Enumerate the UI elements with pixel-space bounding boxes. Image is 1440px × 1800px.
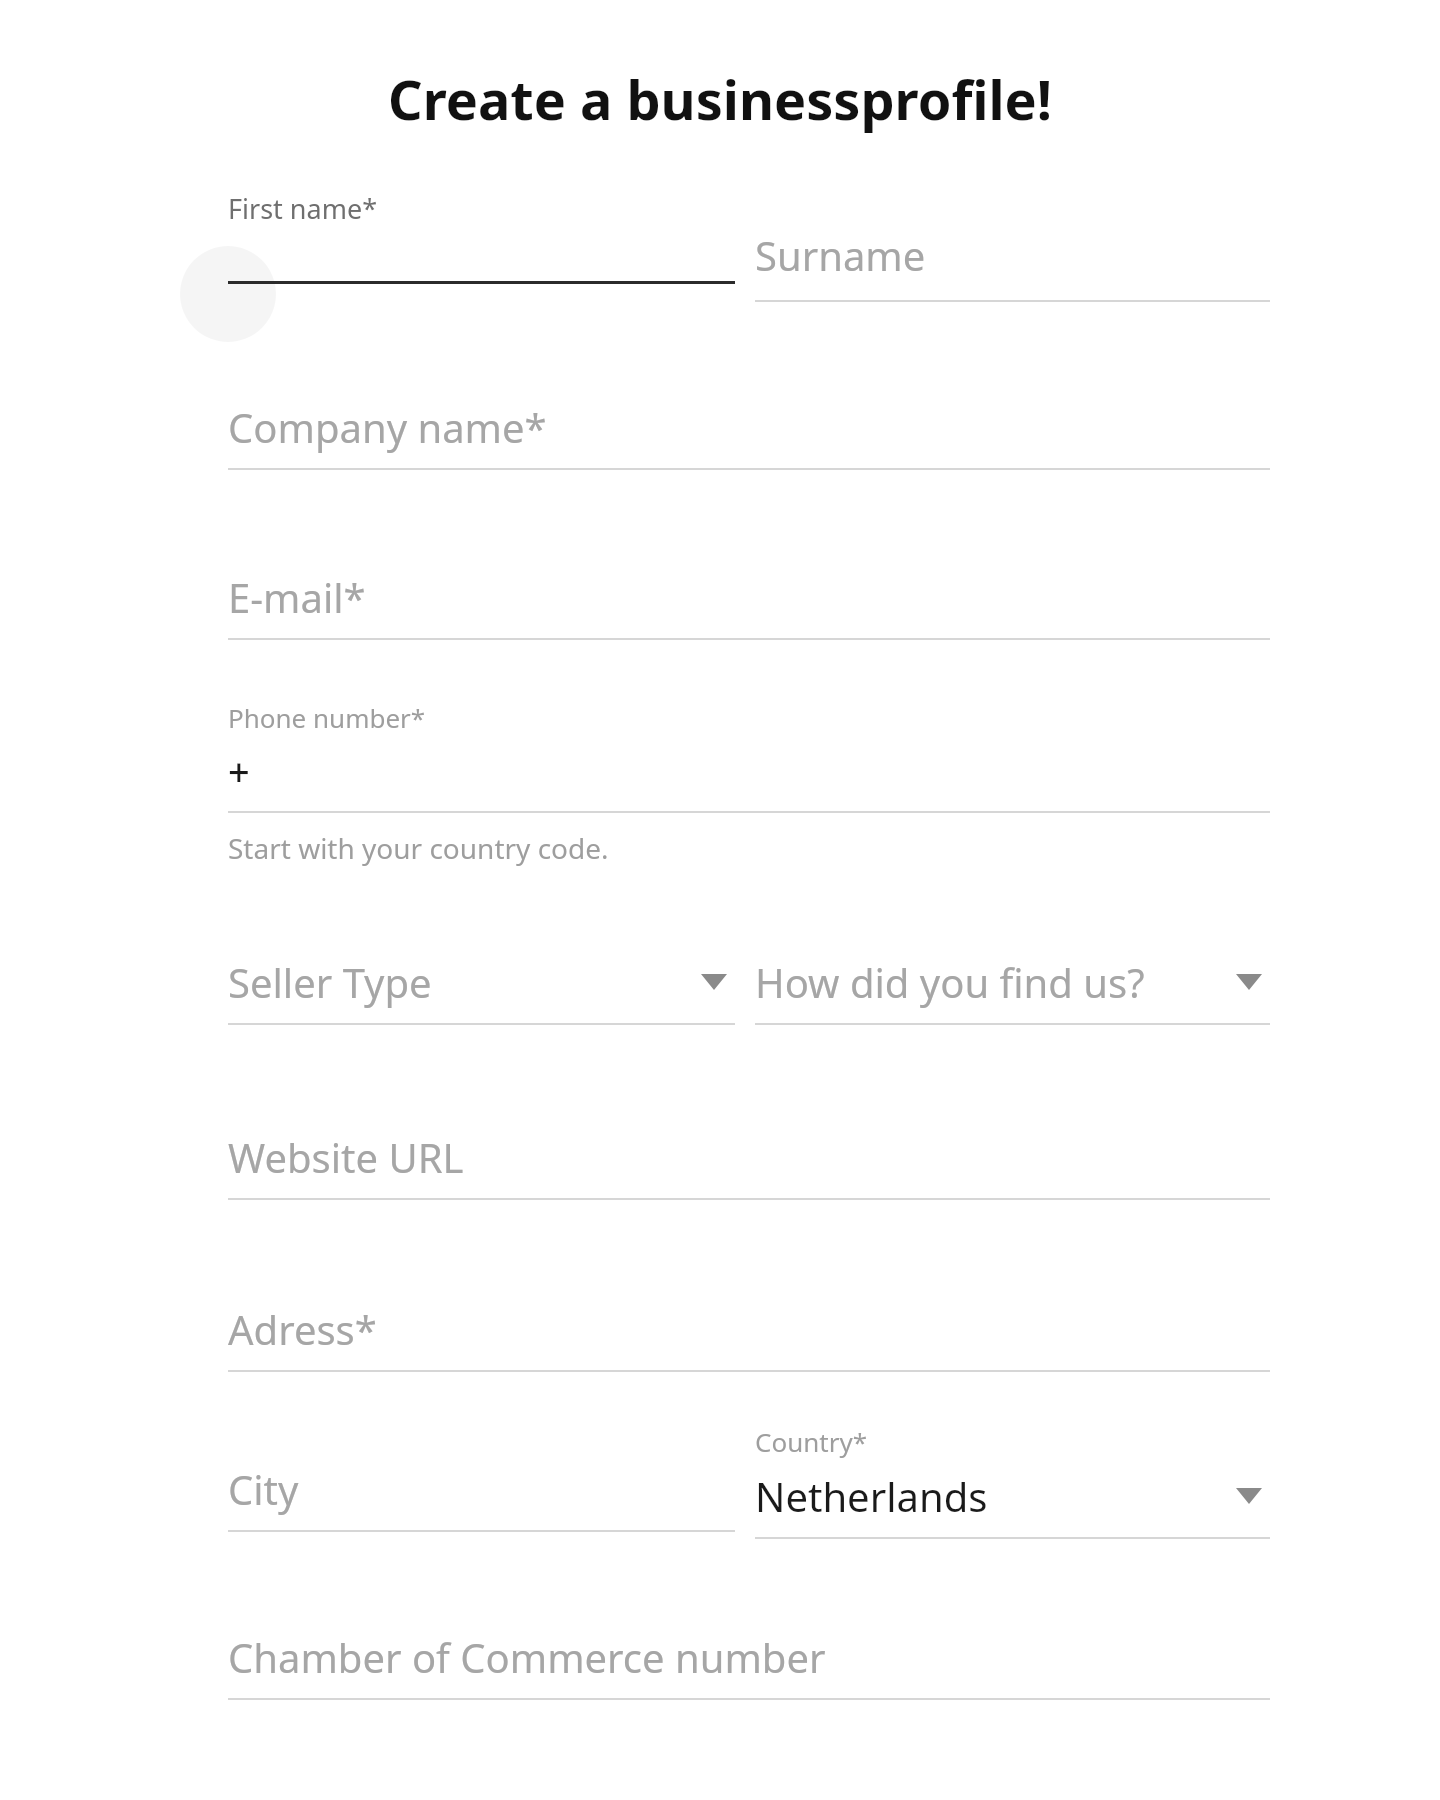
staticText: How did you find us?	[755, 955, 1236, 1009]
staticText: Website URL	[228, 1130, 1270, 1184]
button[interactable]: Chamber of Commerce number	[228, 1630, 1270, 1700]
staticText: City	[228, 1462, 735, 1516]
staticText: E-mail*	[228, 570, 1270, 624]
staticText: Country*	[755, 1424, 868, 1459]
button[interactable]: Phone number*	[228, 700, 1270, 867]
staticText: Adress*	[228, 1302, 1270, 1356]
staticText: First name*	[228, 190, 378, 227]
staticText: Seller Type	[228, 955, 701, 1009]
button[interactable]: Website URL	[228, 1130, 1270, 1200]
staticText: Chamber of Commerce number	[228, 1630, 1270, 1684]
staticText: Create a businessprofile!	[0, 62, 1440, 136]
button[interactable]: Surname	[755, 228, 1270, 302]
button[interactable]: Adress*	[228, 1302, 1270, 1372]
button[interactable]: E-mail*	[228, 570, 1270, 640]
staticText: Netherlands	[755, 1469, 1236, 1523]
button[interactable]: Country dropdown	[755, 1424, 1270, 1539]
staticText: Company name*	[228, 400, 1270, 454]
staticText: Surname	[755, 228, 926, 282]
button[interactable]: City	[228, 1462, 735, 1532]
staticText: Start with your country code.	[228, 829, 609, 867]
staticText: Phone number*	[228, 700, 426, 735]
staticText: +	[228, 745, 1270, 797]
button[interactable]: Seller Type dropdown	[228, 955, 735, 1025]
button[interactable]: First name*	[228, 190, 735, 284]
button[interactable]: How did you find us dropdown	[755, 955, 1270, 1025]
button[interactable]: Company name*	[228, 400, 1270, 470]
